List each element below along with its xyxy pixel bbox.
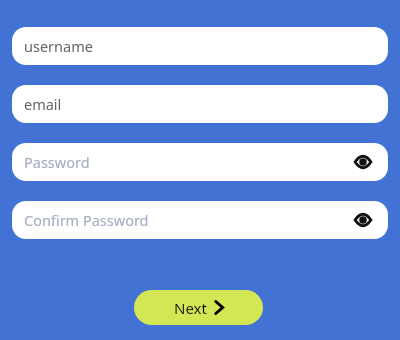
button[interactable]: Show password	[350, 207, 376, 233]
button[interactable]: Confirm Password	[12, 201, 388, 239]
staticText: Confirm Password	[24, 210, 149, 230]
button[interactable]: username	[12, 27, 388, 65]
button[interactable]: email	[12, 85, 388, 123]
button[interactable]: Password	[12, 143, 388, 181]
staticText: Next	[174, 298, 207, 318]
staticText: username	[24, 36, 93, 56]
button[interactable]: Show password	[350, 149, 376, 175]
staticText: email	[24, 94, 62, 114]
staticText: Password	[24, 152, 90, 172]
button[interactable]: Next	[134, 290, 263, 325]
